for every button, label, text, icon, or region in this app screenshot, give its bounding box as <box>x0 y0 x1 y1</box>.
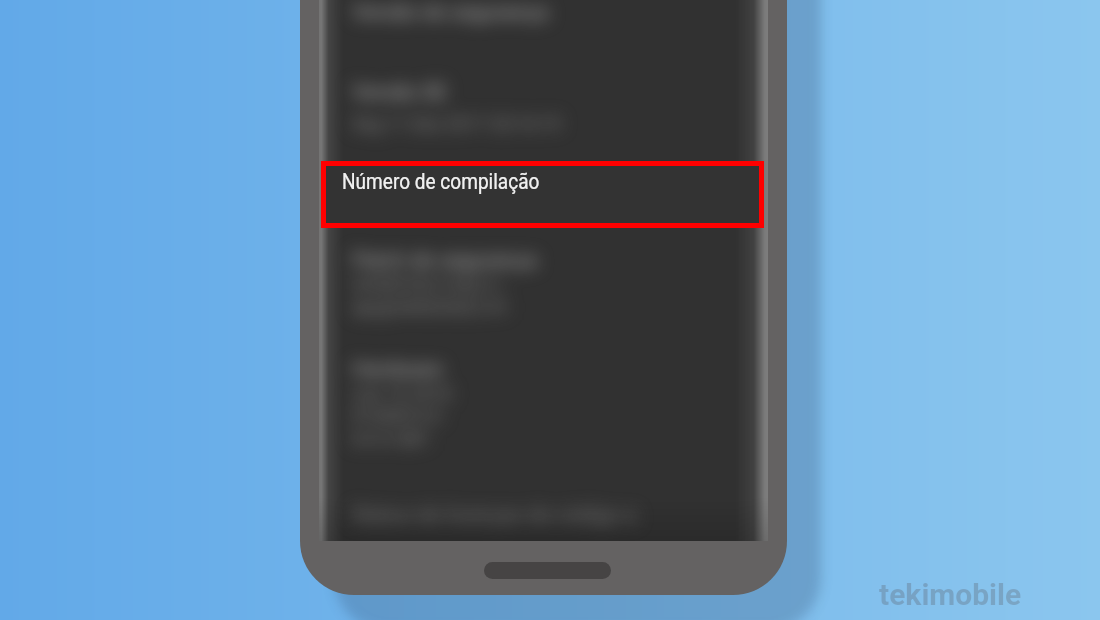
staticText: Versão de segurança <box>352 0 549 25</box>
staticText: Status de licenças de código a <box>352 503 637 528</box>
staticText: Hardware <box>352 357 443 382</box>
staticText: tekimobile <box>879 577 1022 612</box>
staticText: dpi@SWDD5623 #1 <box>352 297 510 318</box>
button[interactable]: Número de compilação <box>321 161 764 228</box>
staticText: Número de compilação <box>342 169 539 195</box>
staticText: Patch de segurança <box>352 248 537 273</box>
staticText: Versão SE <box>352 80 448 105</box>
other: Speaker <box>484 562 611 579</box>
